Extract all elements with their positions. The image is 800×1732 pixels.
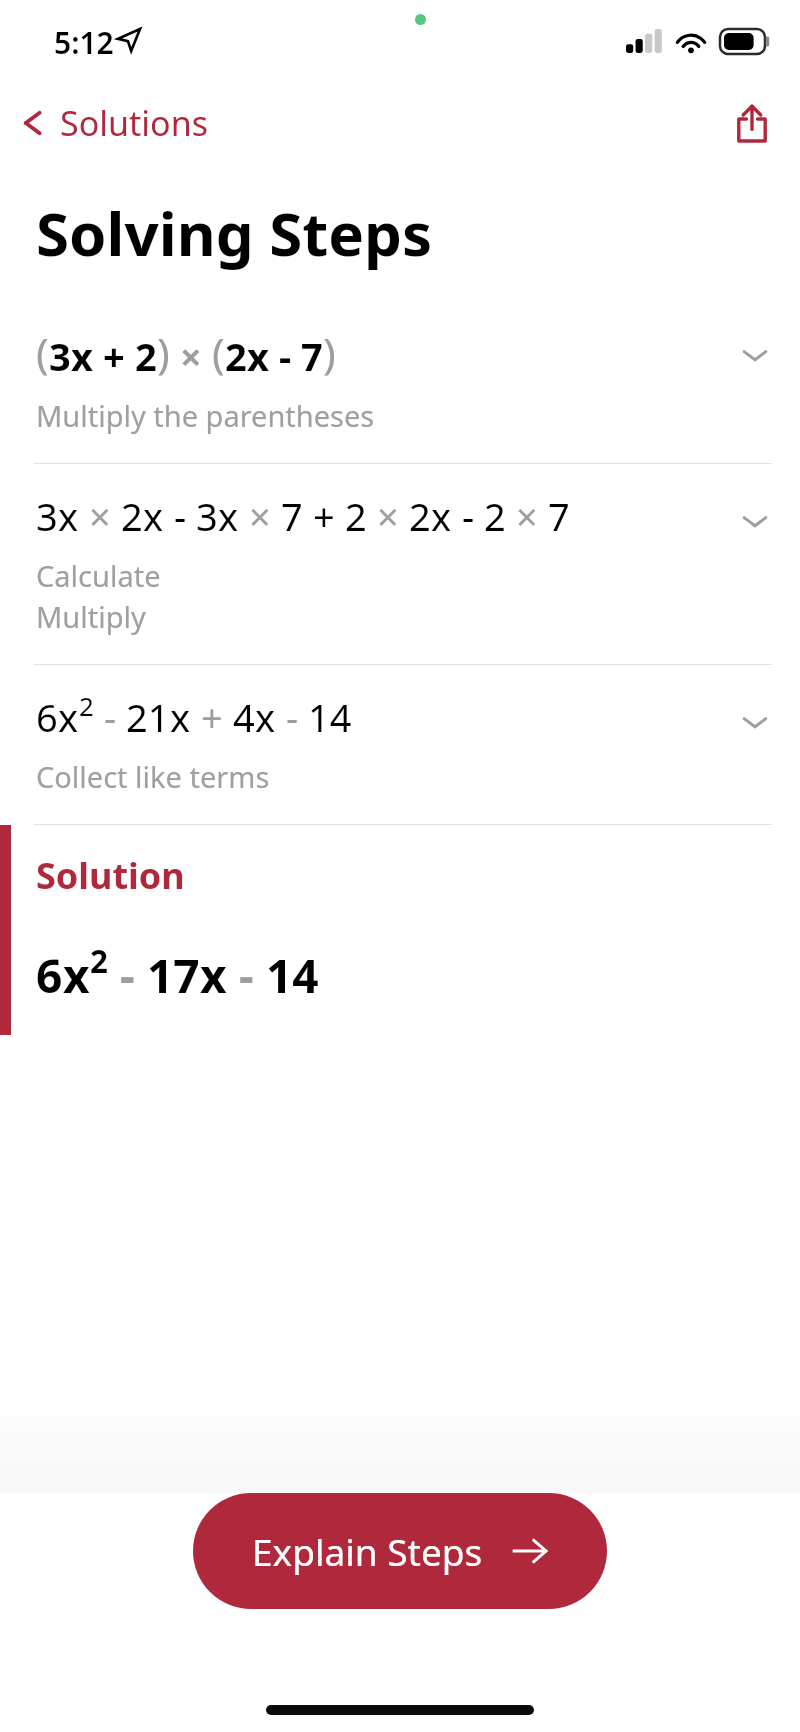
staticText: 2 xyxy=(121,490,143,542)
staticText: x xyxy=(58,490,79,542)
button[interactable]: 6 xyxy=(0,665,800,824)
staticText: × xyxy=(170,330,212,382)
staticText: 7 xyxy=(281,490,303,542)
staticText: Solution xyxy=(36,851,185,900)
staticText: - xyxy=(108,944,147,1007)
button[interactable]: Solutions xyxy=(0,92,226,154)
staticText: x xyxy=(218,490,239,542)
staticText: 21 xyxy=(126,691,170,743)
staticText: Collect like terms xyxy=(36,757,270,796)
staticText: Multiply xyxy=(36,597,146,636)
staticText: + xyxy=(303,490,345,542)
staticText: 3 xyxy=(36,490,58,542)
staticText: 7 xyxy=(301,330,323,382)
staticText: 4 xyxy=(233,691,255,743)
staticText: 7 xyxy=(548,490,570,542)
staticText: 5:12 xyxy=(54,22,114,63)
staticText: - xyxy=(164,490,196,542)
staticText: 2 xyxy=(409,490,431,542)
staticText: - xyxy=(276,691,308,743)
button[interactable]: 3 xyxy=(0,464,800,664)
staticText: x xyxy=(255,691,276,743)
staticText: ( xyxy=(212,324,225,382)
staticText: 14 xyxy=(308,691,352,743)
staticText: x xyxy=(71,330,93,382)
staticText: x xyxy=(431,490,452,542)
staticText: Calculate xyxy=(36,556,161,595)
staticText: - xyxy=(227,944,266,1007)
button[interactable]: ( xyxy=(0,318,800,463)
staticText: x xyxy=(170,691,191,743)
staticText: x xyxy=(200,944,227,1007)
staticText: Solutions xyxy=(60,100,208,146)
staticText: Multiply the parentheses xyxy=(36,396,375,435)
staticText: Solving Steps xyxy=(36,192,433,274)
staticText: ) xyxy=(157,324,170,382)
staticText: 3 xyxy=(49,330,71,382)
staticText: 14 xyxy=(266,944,319,1007)
staticText: 2 xyxy=(135,330,157,382)
staticText: × xyxy=(239,490,281,542)
staticText: x xyxy=(58,691,79,743)
staticText: 2 xyxy=(345,490,367,542)
staticText: 17 xyxy=(147,944,200,1007)
staticText: 2 xyxy=(225,330,247,382)
staticText: 2 xyxy=(79,688,94,723)
button[interactable]: Share xyxy=(724,95,780,151)
staticText: 2 xyxy=(90,940,108,983)
staticText: 6 xyxy=(36,944,63,1007)
staticText: 2 xyxy=(484,490,506,542)
staticText: - xyxy=(94,691,126,743)
staticText: ( xyxy=(36,324,49,382)
staticText: ) xyxy=(323,324,336,382)
staticText: x xyxy=(247,330,269,382)
staticText: 6 xyxy=(36,691,58,743)
staticText: × xyxy=(506,490,548,542)
staticText: - xyxy=(452,490,484,542)
staticText: x xyxy=(63,944,90,1007)
staticText: 3 xyxy=(196,490,218,542)
staticText: x xyxy=(143,490,164,542)
staticText: Explain Steps xyxy=(252,1526,483,1576)
button[interactable]: Explain Steps xyxy=(193,1493,607,1609)
staticText: × xyxy=(367,490,409,542)
staticText: × xyxy=(79,490,121,542)
staticText: + xyxy=(93,330,135,382)
staticText: - xyxy=(269,330,301,382)
staticText: + xyxy=(191,691,233,743)
